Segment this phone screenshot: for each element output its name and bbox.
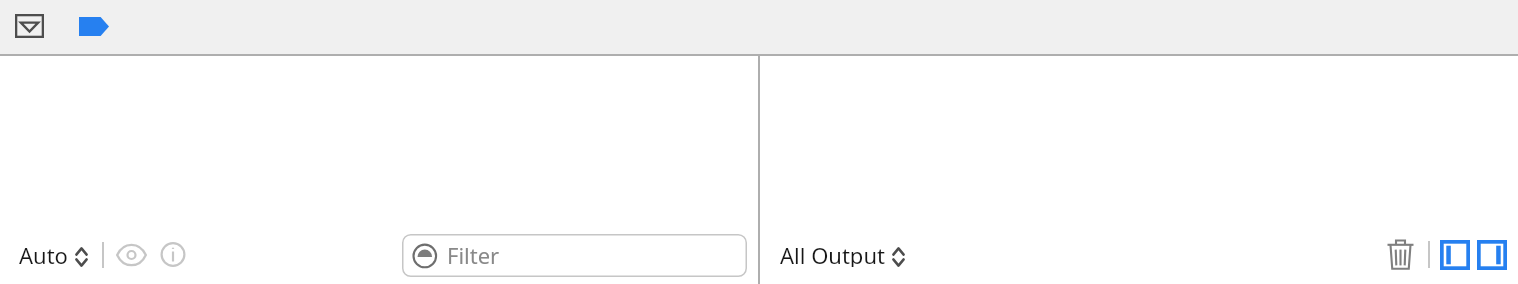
button[interactable]: All Output bbox=[780, 240, 905, 267]
button[interactable]: Show debugger pane bbox=[1477, 240, 1507, 270]
button[interactable]: Show console pane bbox=[1440, 240, 1470, 270]
staticText: Auto bbox=[19, 240, 68, 267]
button[interactable]: Continue bbox=[79, 17, 109, 36]
button[interactable]: Show console bbox=[116, 244, 147, 266]
staticText: All Output bbox=[780, 240, 885, 267]
button[interactable]: Hide debug area bbox=[15, 14, 44, 38]
button[interactable]: Clear console bbox=[1386, 239, 1415, 270]
staticText: Filter bbox=[447, 240, 500, 270]
button[interactable]: Filter bbox=[402, 234, 747, 277]
button[interactable]: Information bbox=[160, 242, 186, 267]
button[interactable]: Auto bbox=[19, 240, 88, 267]
